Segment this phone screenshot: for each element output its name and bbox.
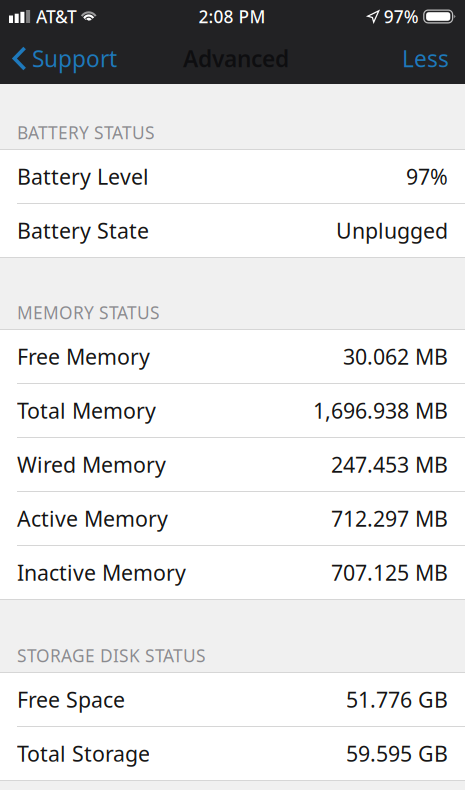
button[interactable]: Free Memory	[0, 330, 465, 383]
staticText: Total Storage	[17, 739, 150, 768]
staticText: STORAGE DISK STATUS	[17, 644, 206, 667]
staticText: 1,696.938 MB	[313, 396, 448, 425]
staticText: Inactive Memory	[17, 558, 186, 587]
staticText: Battery State	[17, 216, 149, 245]
button[interactable]: Free Space	[0, 673, 465, 726]
staticText: 247.453 MB	[331, 450, 448, 479]
staticText: BATTERY STATUS	[17, 121, 155, 144]
staticText: Battery Level	[17, 162, 149, 191]
button[interactable]: Total Storage	[0, 727, 465, 780]
staticText: 707.125 MB	[331, 558, 448, 587]
staticText: AT&T	[36, 5, 77, 28]
staticText: Total Memory	[17, 396, 156, 425]
staticText: 59.595 GB	[346, 739, 448, 768]
staticText: Less	[402, 43, 449, 73]
button[interactable]: Active Memory	[0, 492, 465, 545]
button[interactable]: Less	[390, 36, 461, 80]
staticText: Advanced	[183, 43, 289, 73]
staticText: 2:08 PM	[199, 5, 266, 28]
button[interactable]: Battery Level	[0, 150, 465, 203]
button[interactable]: Total Memory	[0, 384, 465, 437]
staticText: Support	[32, 43, 117, 73]
staticText: MEMORY STATUS	[17, 301, 160, 324]
button[interactable]: Wired Memory	[0, 438, 465, 491]
staticText: 30.062 MB	[343, 342, 448, 371]
staticText: Free Memory	[17, 342, 150, 371]
staticText: Free Space	[17, 685, 125, 714]
button[interactable]: Inactive Memory	[0, 546, 465, 599]
button[interactable]: Support	[4, 36, 125, 80]
staticText: 51.776 GB	[346, 685, 448, 714]
staticText: 97%	[384, 5, 419, 28]
staticText: 712.297 MB	[331, 504, 448, 533]
staticText: 97%	[406, 162, 448, 191]
staticText: Unplugged	[336, 216, 448, 245]
button[interactable]: Battery State	[0, 204, 465, 257]
staticText: Active Memory	[17, 504, 168, 533]
staticText: Wired Memory	[17, 450, 166, 479]
